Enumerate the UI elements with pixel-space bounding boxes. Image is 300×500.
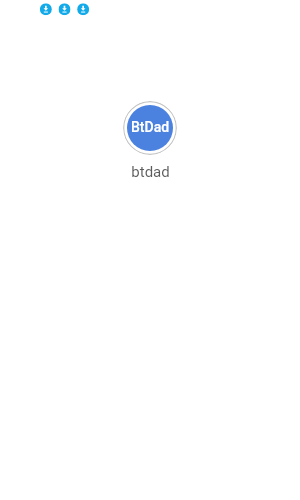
button[interactable]: Download	[58, 3, 70, 15]
button[interactable]: Download	[40, 3, 52, 15]
staticText: btdad	[131, 163, 170, 181]
button[interactable]: btdad account avatar	[123, 101, 177, 155]
button[interactable]: Download	[77, 3, 89, 15]
staticText: BtDad	[131, 119, 170, 135]
